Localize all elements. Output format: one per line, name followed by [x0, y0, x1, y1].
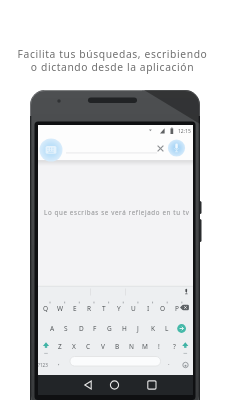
- button[interactable]: D: [61, 320, 101, 336]
- button[interactable]: K: [133, 320, 173, 336]
- staticText: Q: [43, 304, 49, 313]
- button[interactable]: [40, 340, 51, 351]
- staticText: D: [79, 324, 84, 333]
- staticText: Z: [58, 342, 62, 351]
- staticText: .: [168, 359, 170, 367]
- button[interactable]: Q: [26, 300, 66, 316]
- staticText: B: [115, 342, 120, 351]
- button[interactable]: [181, 360, 190, 369]
- button[interactable]: X: [54, 338, 94, 354]
- staticText: L: [165, 324, 169, 333]
- button[interactable]: J: [118, 320, 158, 336]
- staticText: K: [151, 324, 156, 333]
- button[interactable]: S: [46, 320, 86, 336]
- button[interactable]: C: [68, 338, 108, 354]
- staticText: ,: [58, 359, 60, 367]
- staticText: Facilita tus búsquedas, escribiendo o di…: [0, 47, 225, 74]
- button[interactable]: Y: [99, 300, 139, 316]
- button[interactable]: V: [83, 338, 123, 354]
- staticText: A: [50, 324, 55, 333]
- button[interactable]: [180, 302, 191, 313]
- staticText: X: [72, 342, 76, 351]
- button[interactable]: I: [128, 300, 168, 316]
- button[interactable]: [80, 377, 96, 392]
- button[interactable]: .: [149, 355, 189, 371]
- button[interactable]: !: [139, 338, 179, 354]
- button[interactable]: T: [84, 300, 124, 316]
- button[interactable]: E: [55, 300, 95, 316]
- staticText: P: [175, 304, 179, 313]
- staticText: T: [102, 304, 106, 313]
- button[interactable]: [155, 143, 166, 154]
- button[interactable]: L: [147, 320, 187, 336]
- staticText: W: [57, 304, 64, 313]
- staticText: F: [93, 324, 97, 333]
- staticText: U: [131, 304, 136, 313]
- button[interactable]: [39, 138, 63, 162]
- button[interactable]: ?: [154, 338, 194, 354]
- staticText: Lo que escribas se verá reflejado en tu …: [44, 208, 190, 216]
- staticText: I: [147, 304, 150, 313]
- button[interactable]: [106, 377, 123, 392]
- button[interactable]: W: [40, 300, 80, 316]
- staticText: !: [158, 342, 160, 351]
- button[interactable]: N: [111, 338, 151, 354]
- button[interactable]: A: [32, 320, 72, 336]
- button[interactable]: ?123: [23, 357, 63, 373]
- button[interactable]: U: [113, 300, 153, 316]
- staticText: N: [129, 342, 134, 351]
- button[interactable]: G: [89, 320, 129, 336]
- staticText: O: [160, 304, 166, 313]
- button[interactable]: H: [104, 320, 144, 336]
- button[interactable]: ,: [39, 355, 79, 371]
- staticText: M: [142, 342, 148, 351]
- staticText: G: [107, 324, 112, 333]
- button[interactable]: F: [75, 320, 115, 336]
- staticText: 12:15: [178, 128, 191, 135]
- button[interactable]: [144, 377, 160, 392]
- button[interactable]: P: [157, 300, 197, 316]
- staticText: Y: [117, 304, 121, 313]
- button[interactable]: B: [97, 338, 137, 354]
- staticText: V: [101, 342, 105, 351]
- staticText: S: [64, 324, 68, 333]
- staticText: C: [86, 342, 91, 351]
- button[interactable]: M: [125, 338, 165, 354]
- staticText: R: [87, 304, 92, 313]
- staticText: ?123: [38, 362, 48, 368]
- button[interactable]: [70, 356, 161, 366]
- button[interactable]: O: [143, 300, 183, 316]
- staticText: H: [122, 324, 127, 333]
- staticText: J: [137, 324, 139, 333]
- staticText: E: [73, 304, 77, 313]
- button[interactable]: [176, 323, 187, 334]
- button[interactable]: [180, 340, 191, 351]
- staticText: ?: [173, 342, 176, 351]
- button[interactable]: R: [69, 300, 109, 316]
- button[interactable]: Z: [40, 338, 80, 354]
- button[interactable]: [168, 139, 186, 157]
